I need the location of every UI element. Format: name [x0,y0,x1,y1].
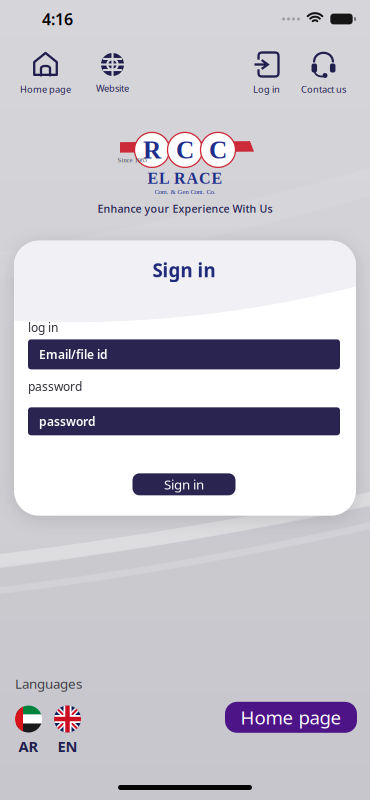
staticText: EL RACE [147,169,222,187]
staticText: Home page [240,705,341,730]
button[interactable]: Contact us [301,52,346,95]
staticText: Com. & Gen Cont. Co. [154,188,215,195]
staticText: Home page [20,83,71,95]
staticText: Email/file id [39,346,108,362]
staticText: password [39,413,96,429]
button[interactable]: Home page [225,702,357,733]
button[interactable]: Sign in [132,473,235,495]
staticText: Sign in [164,475,204,493]
button[interactable]: Email/file id [28,339,340,369]
button[interactable]: Log in [253,52,280,95]
staticText: Enhance your Experience With Us [97,201,272,216]
staticText: Sign in [152,258,215,282]
staticText: log in [28,319,58,335]
staticText: C [209,136,227,164]
staticText: 4:16 [42,8,73,30]
button[interactable]: English [54,705,81,756]
button[interactable]: Website [96,52,129,94]
staticText: password [28,378,82,394]
button[interactable]: Arabic [15,705,42,756]
staticText: Log in [253,83,280,95]
staticText: AR [18,736,38,756]
staticText: C [176,136,194,164]
staticText: Website [96,82,129,94]
staticText: R [143,136,161,164]
staticText: Contact us [301,83,346,95]
staticText: Languages [15,675,82,692]
button[interactable]: Home page [20,52,71,95]
staticText: Since 1983 [117,156,146,164]
staticText: EN [57,736,77,756]
button[interactable]: password [28,407,340,435]
